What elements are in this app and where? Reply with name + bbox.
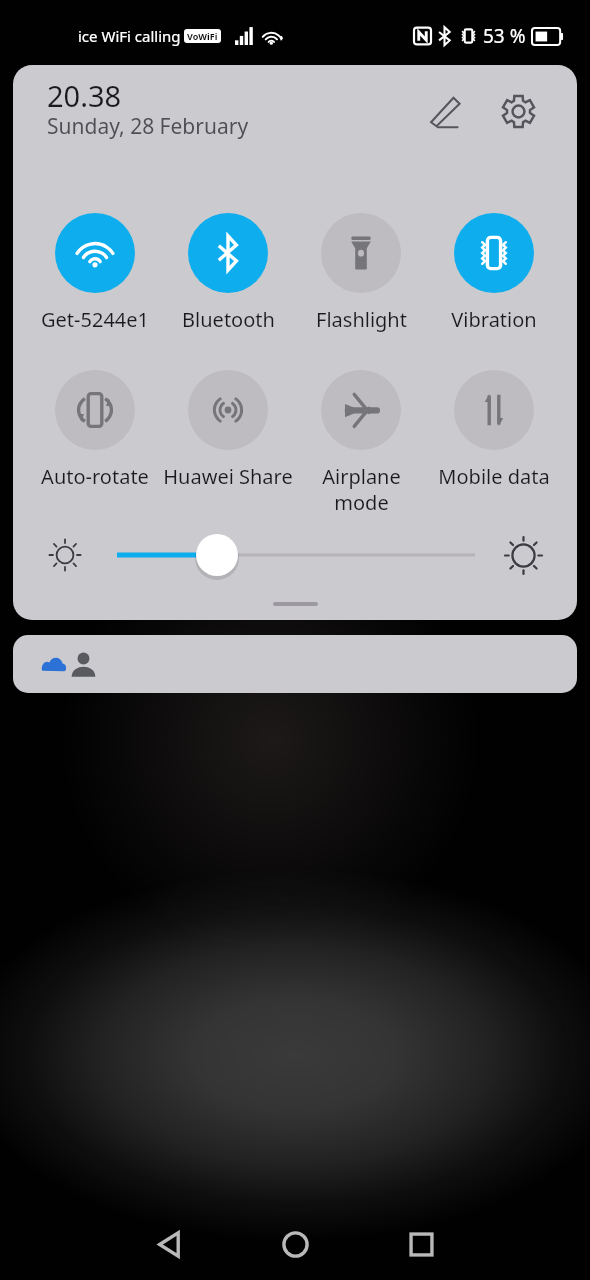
button[interactable]: Lower brightness <box>50 540 80 570</box>
button[interactable]: Edit quick settings <box>413 79 479 145</box>
button[interactable]: Auto-rotate <box>13 370 185 490</box>
staticText: Sunday, 28 February <box>47 112 249 141</box>
button[interactable]: Back <box>129 1208 209 1280</box>
staticText: 20.38 <box>47 76 122 115</box>
button[interactable]: Airplane mode <box>271 370 451 515</box>
button[interactable]: Raise brightness <box>505 537 542 574</box>
button[interactable]: Get-5244e1 <box>13 213 185 333</box>
button[interactable]: Settings <box>485 78 551 144</box>
staticText: 53 % <box>483 23 526 49</box>
button[interactable]: Mobile data <box>404 370 577 490</box>
staticText: Auto-rotate <box>41 463 149 490</box>
button[interactable]: Recents <box>381 1208 461 1280</box>
staticText: Vibration <box>451 306 537 333</box>
staticText: Get-5244e1 <box>41 306 149 333</box>
staticText: Airplane mode <box>322 463 401 515</box>
staticText: Flashlight <box>316 306 407 333</box>
button[interactable]: Bluetooth <box>138 213 318 333</box>
button[interactable]: Huawei Share <box>138 370 318 490</box>
button[interactable]: Collapse panel <box>247 589 343 619</box>
button[interactable]: Vibration <box>404 213 577 333</box>
staticText: Mobile data <box>438 463 550 490</box>
button[interactable]: Brightness <box>103 533 483 577</box>
button[interactable]: Home <box>255 1208 335 1280</box>
staticText: Huawei Share <box>163 463 293 490</box>
button[interactable]: Flashlight <box>271 213 451 333</box>
staticText: ice WiFi calling <box>78 26 181 46</box>
staticText: VoWiFi <box>187 30 218 42</box>
button[interactable]: Notifications <box>13 635 577 693</box>
staticText: Bluetooth <box>182 306 275 333</box>
